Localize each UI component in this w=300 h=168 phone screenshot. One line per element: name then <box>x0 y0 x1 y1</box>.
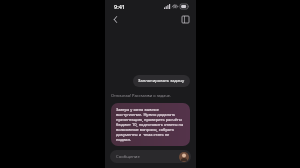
button[interactable]: Voice input <box>179 152 189 162</box>
staticText: 9:41 <box>114 3 125 10</box>
button[interactable]: Menu <box>179 13 192 26</box>
button[interactable]: Завтра у меня важное выступление. Нужно … <box>111 103 190 146</box>
staticText: Запланировать задачу <box>138 78 185 84</box>
button[interactable]: Сообщение <box>110 150 191 163</box>
staticText: Сообщение <box>116 154 179 160</box>
button[interactable]: Back <box>109 13 122 26</box>
button[interactable]: Запланировать задачу <box>133 75 190 87</box>
staticText: Завтра у меня важное выступление. Нужно … <box>116 107 185 142</box>
staticText: Отличная! Рассказжи о задаче. <box>111 93 172 98</box>
